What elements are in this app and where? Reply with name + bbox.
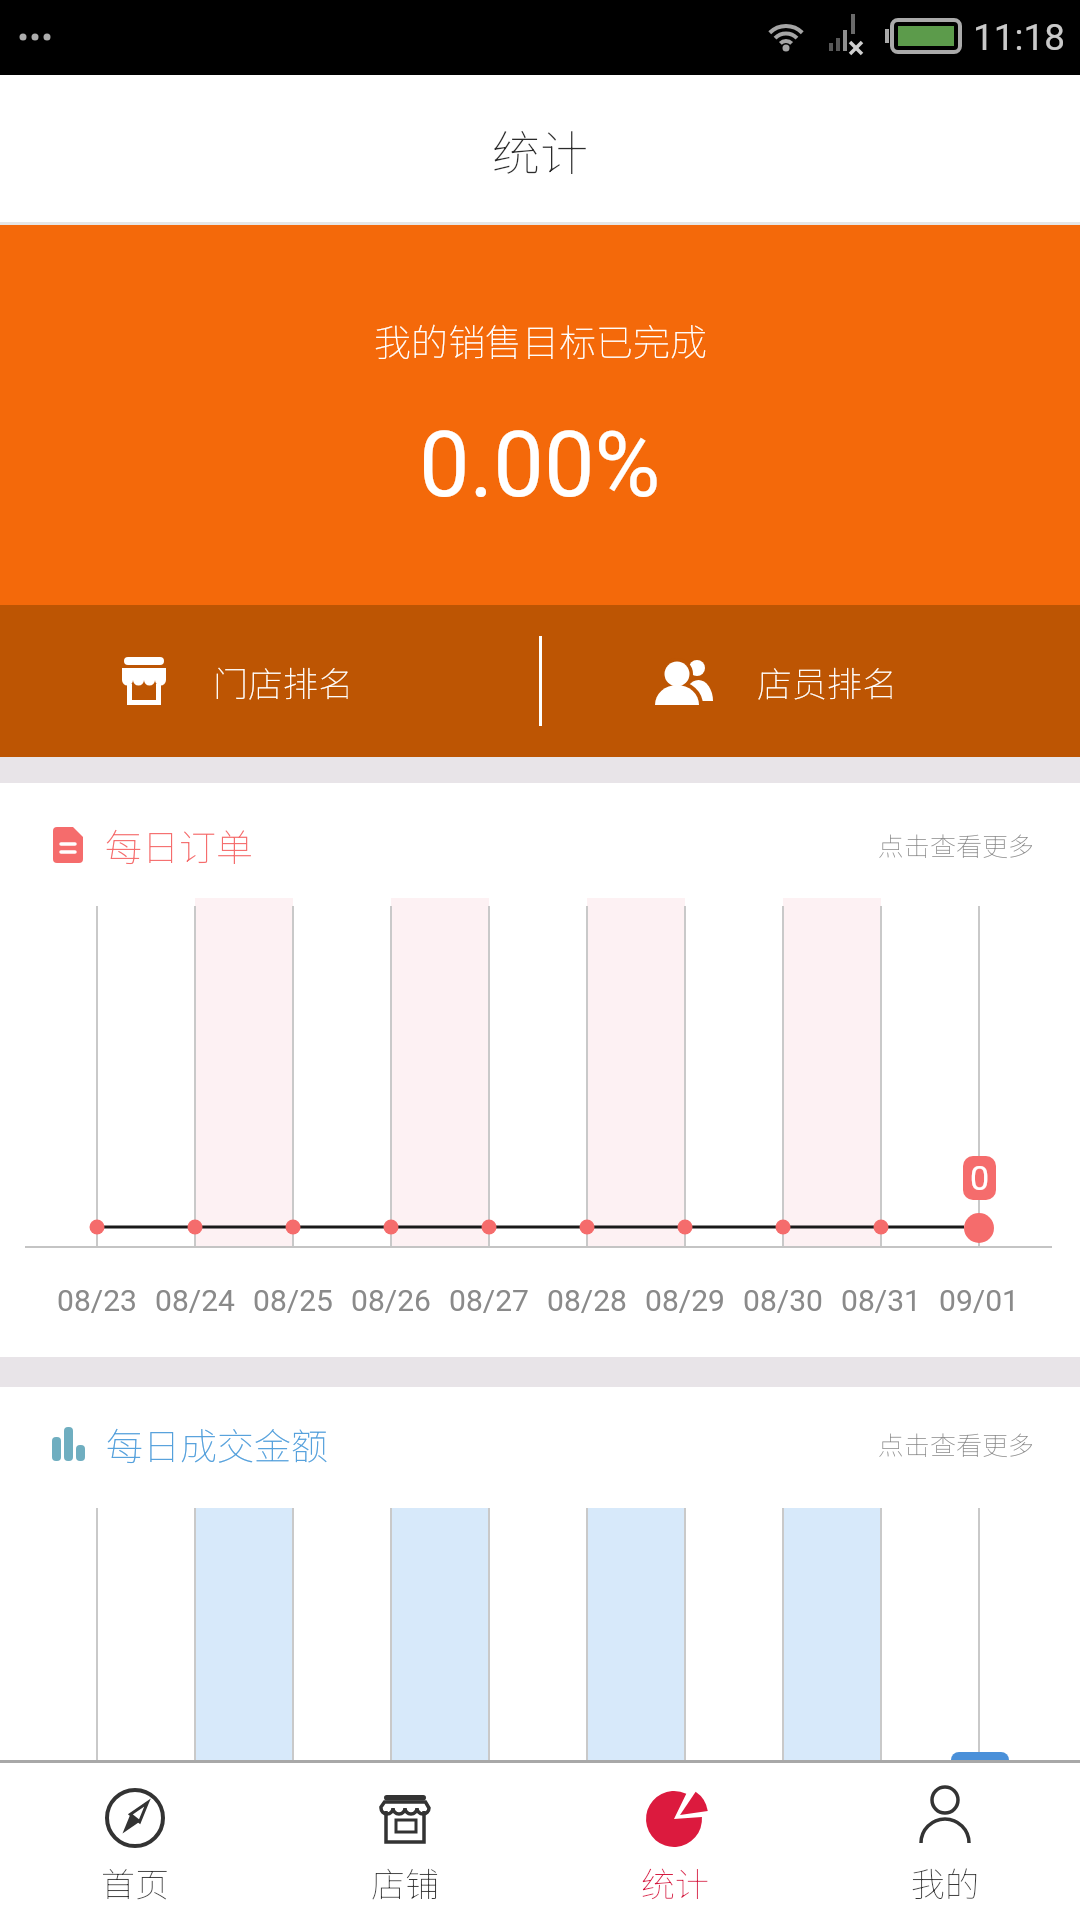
staticText: 09/01	[939, 1283, 1019, 1318]
staticText: 08/27	[449, 1283, 529, 1318]
staticText: 我的销售目标已完成	[374, 313, 707, 359]
staticText: 0.00%	[419, 413, 661, 518]
button[interactable]: 店员排名	[540, 605, 1080, 757]
staticText: 08/24	[155, 1283, 235, 1318]
staticText: 08/26	[351, 1283, 431, 1318]
staticText: 每日成交金额	[106, 1417, 328, 1471]
staticText: 首页	[101, 1858, 169, 1907]
staticText: 08/29	[645, 1283, 725, 1318]
button[interactable]: 我的	[810, 1763, 1080, 1920]
staticText: 店员排名	[757, 656, 898, 707]
button[interactable]: 点击查看更多	[878, 826, 1080, 864]
staticText: 08/23	[57, 1283, 137, 1318]
staticText: 0	[970, 1158, 990, 1198]
button[interactable]: 首页	[0, 1763, 270, 1920]
staticText: 每日订单	[105, 818, 253, 872]
staticText: 统计	[492, 115, 589, 185]
staticText: 门店排名	[213, 656, 354, 707]
staticText: 点击查看更多	[878, 826, 1035, 864]
staticText: 08/30	[743, 1283, 823, 1318]
staticText: 08/31	[841, 1283, 921, 1318]
button[interactable]: 门店排名	[0, 605, 540, 757]
staticText: 11:18	[973, 16, 1066, 59]
button[interactable]: 点击查看更多	[878, 1425, 1080, 1463]
button[interactable]: 店铺	[270, 1763, 540, 1920]
staticText: 店铺	[371, 1858, 439, 1907]
staticText: 我的	[911, 1858, 979, 1907]
staticText: 点击查看更多	[878, 1425, 1035, 1463]
staticText: 统计	[641, 1858, 709, 1907]
staticText: 08/25	[253, 1283, 333, 1318]
staticText: 08/28	[547, 1283, 627, 1318]
button[interactable]: 统计	[540, 1763, 810, 1920]
